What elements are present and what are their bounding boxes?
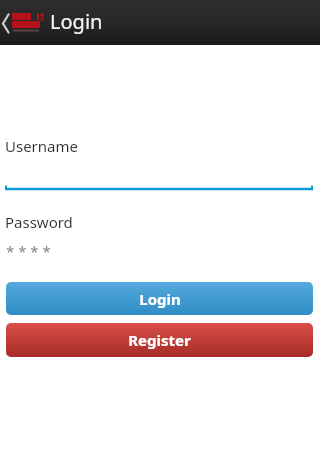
staticText: Login: [50, 8, 103, 35]
staticText: Login: [139, 289, 181, 309]
button[interactable]: Password field: [6, 240, 313, 262]
button[interactable]: Smart Foundation logo: [12, 12, 48, 34]
button[interactable]: Back: [0, 0, 14, 45]
button[interactable]: Login: [6, 282, 313, 315]
staticText: Username: [5, 136, 78, 156]
staticText: * * * *: [6, 241, 51, 261]
button[interactable]: Register: [6, 323, 313, 357]
staticText: Password: [5, 212, 73, 232]
staticText: Register: [128, 330, 191, 350]
button[interactable]: Username field: [5, 174, 313, 194]
